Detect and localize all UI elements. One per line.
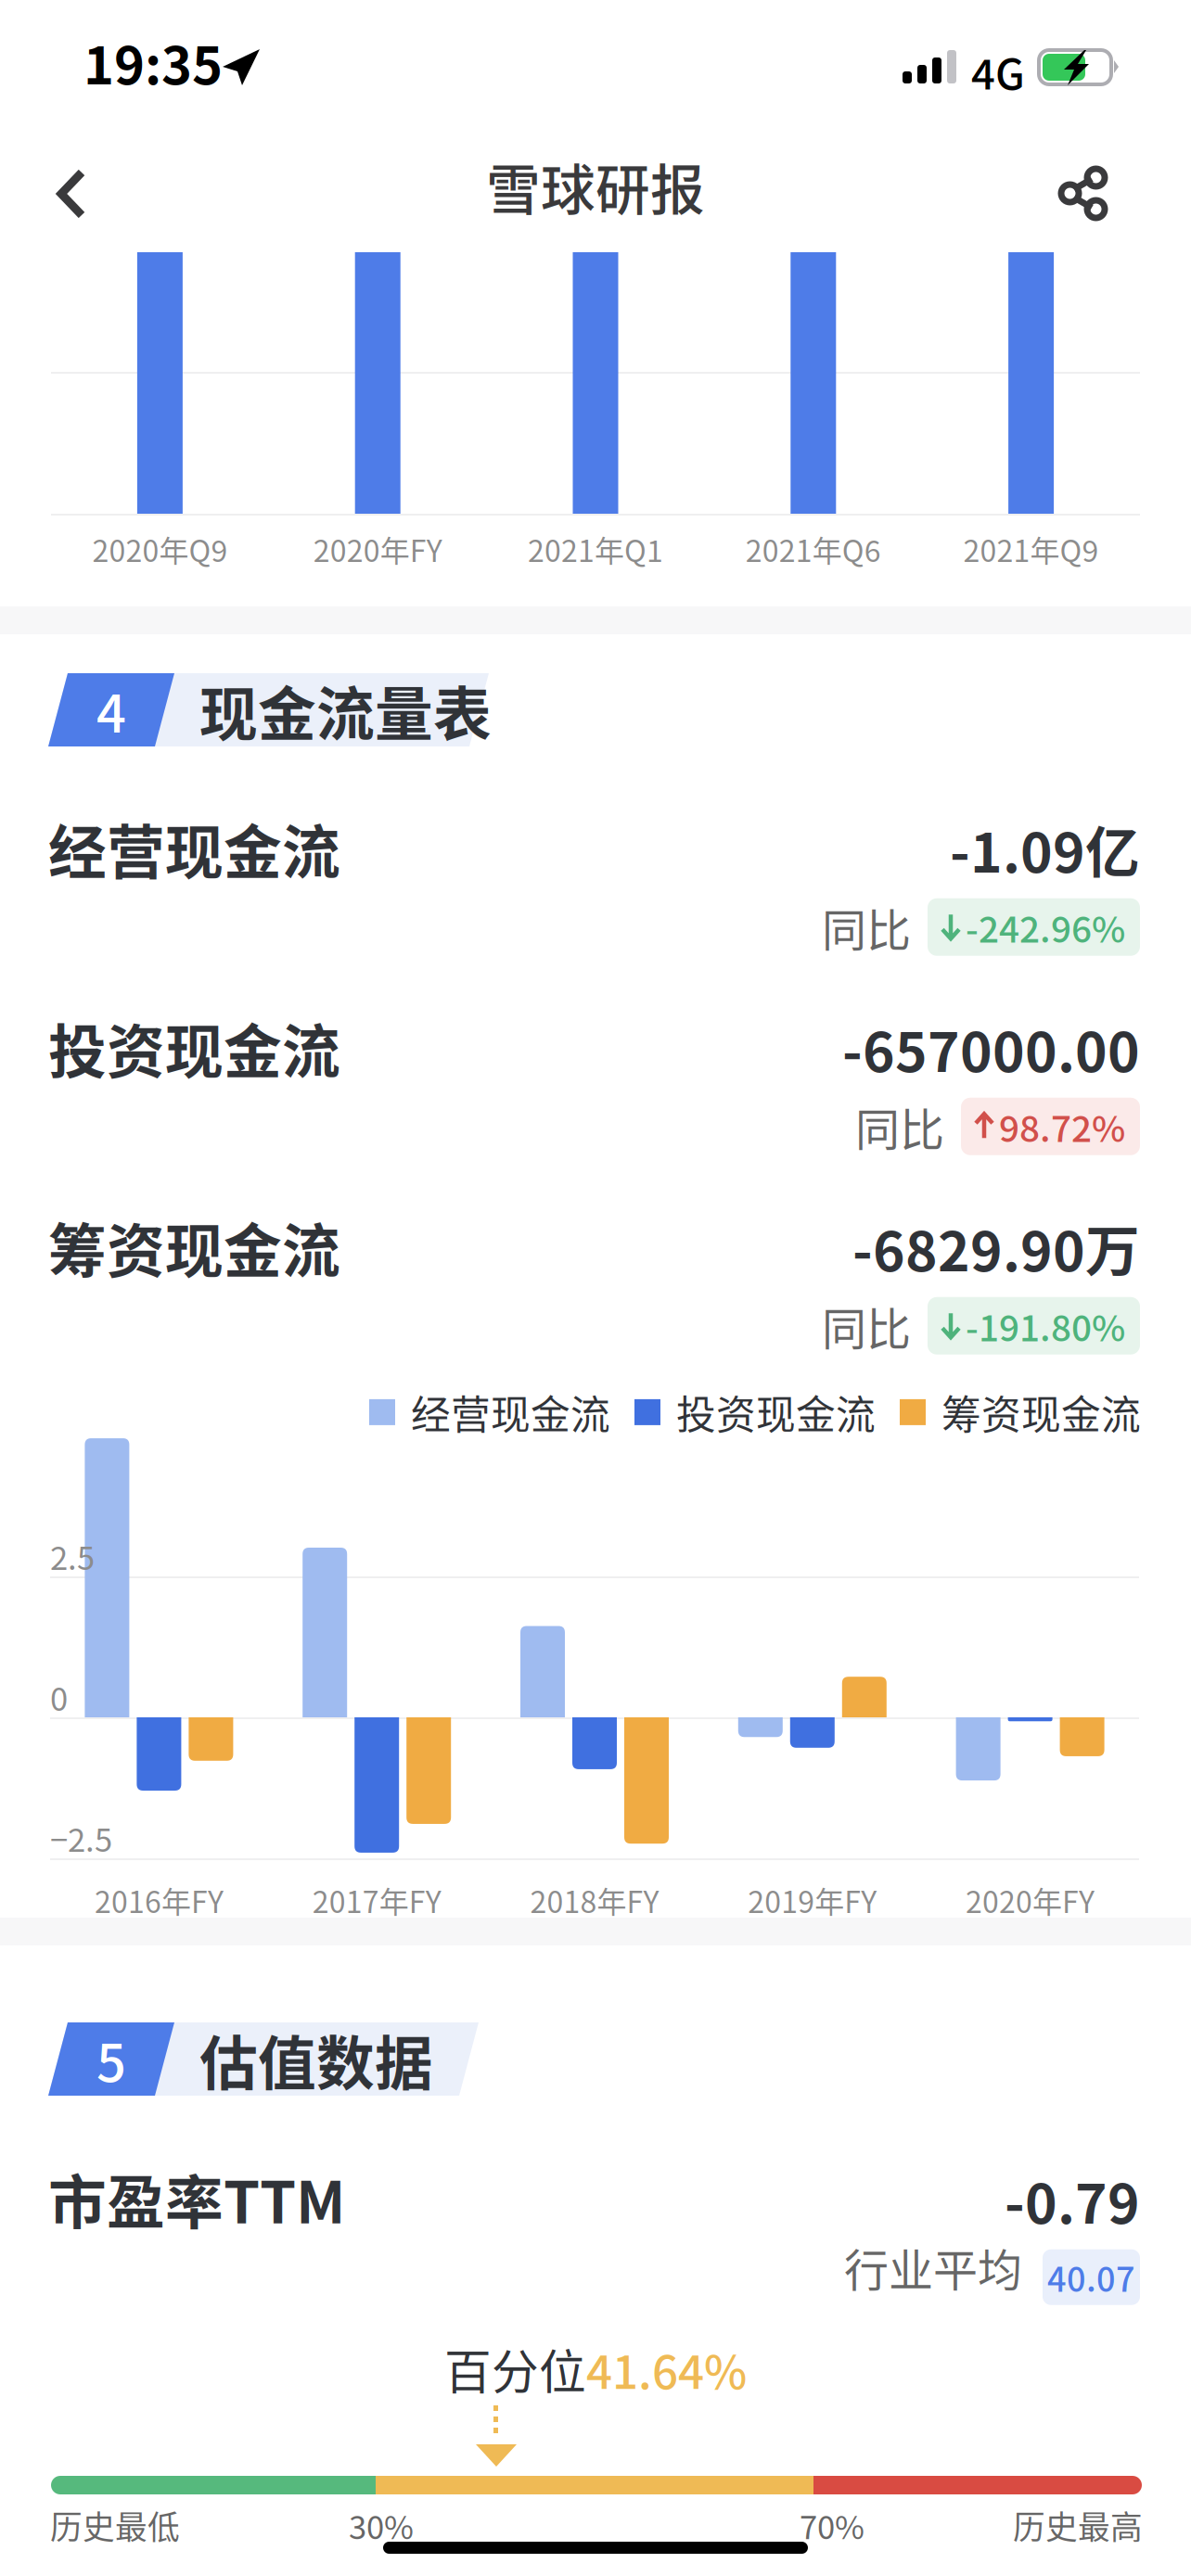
staticText: 筹资现金流 <box>48 1205 340 1289</box>
staticText: 4 <box>96 672 126 747</box>
staticText: 筹资现金流 <box>941 1384 1141 1441</box>
staticText: 雪球研报 <box>486 147 705 226</box>
staticText: 41.64% <box>586 2336 747 2402</box>
staticText: 2021年Q1 <box>528 527 663 570</box>
staticText: 历史最高 <box>1013 2502 1143 2548</box>
staticText: 2020年Q9 <box>92 527 228 570</box>
staticText: 行业平均 <box>844 2235 1022 2299</box>
staticText: 40.07 <box>1047 2253 1135 2301</box>
staticText: 98.72% <box>999 1101 1125 1152</box>
staticText: 估值数据 <box>199 2017 433 2101</box>
staticText: 4G <box>971 41 1025 102</box>
staticText: 2017年FY <box>312 1878 441 1921</box>
staticText: -0.79 <box>1005 2161 1140 2239</box>
staticText: 2016年FY <box>95 1878 223 1921</box>
staticText: 0 <box>50 1674 68 1720</box>
staticText: 70% <box>800 2502 864 2548</box>
staticText: −2.5 <box>50 1815 112 1861</box>
button[interactable]: 返回 <box>33 150 109 226</box>
staticText: 市盈率TTM <box>48 2156 345 2240</box>
staticText: -1.09亿 <box>950 810 1140 888</box>
staticText: 2020年FY <box>966 1878 1095 1921</box>
staticText: -242.96% <box>966 901 1125 953</box>
staticText: 经营现金流 <box>411 1384 610 1441</box>
staticText: 2021年Q6 <box>746 527 881 570</box>
staticText: 百分位 <box>444 2335 586 2403</box>
staticText: -191.80% <box>966 1300 1125 1352</box>
staticText: 5 <box>96 2021 126 2097</box>
staticText: 同比 <box>822 895 911 959</box>
staticText: 2021年Q9 <box>963 527 1099 570</box>
staticText: 2020年FY <box>313 527 442 570</box>
staticText: -657000.00 <box>842 1009 1140 1088</box>
staticText: -6829.90万 <box>852 1208 1140 1287</box>
staticText: 同比 <box>855 1094 944 1159</box>
staticText: 2.5 <box>50 1533 95 1579</box>
button[interactable]: 分享 <box>1061 169 1106 218</box>
staticText: 19:35 <box>83 24 223 99</box>
staticText: 2019年FY <box>748 1878 877 1921</box>
staticText: 2018年FY <box>530 1878 659 1921</box>
staticText: 投资现金流 <box>48 1005 340 1089</box>
staticText: 历史最低 <box>50 2502 180 2548</box>
staticText: 投资现金流 <box>676 1384 876 1441</box>
staticText: 30% <box>349 2502 414 2548</box>
staticText: 同比 <box>822 1294 911 1358</box>
staticText: 经营现金流 <box>48 806 340 890</box>
staticText: 现金流量表 <box>199 668 492 752</box>
